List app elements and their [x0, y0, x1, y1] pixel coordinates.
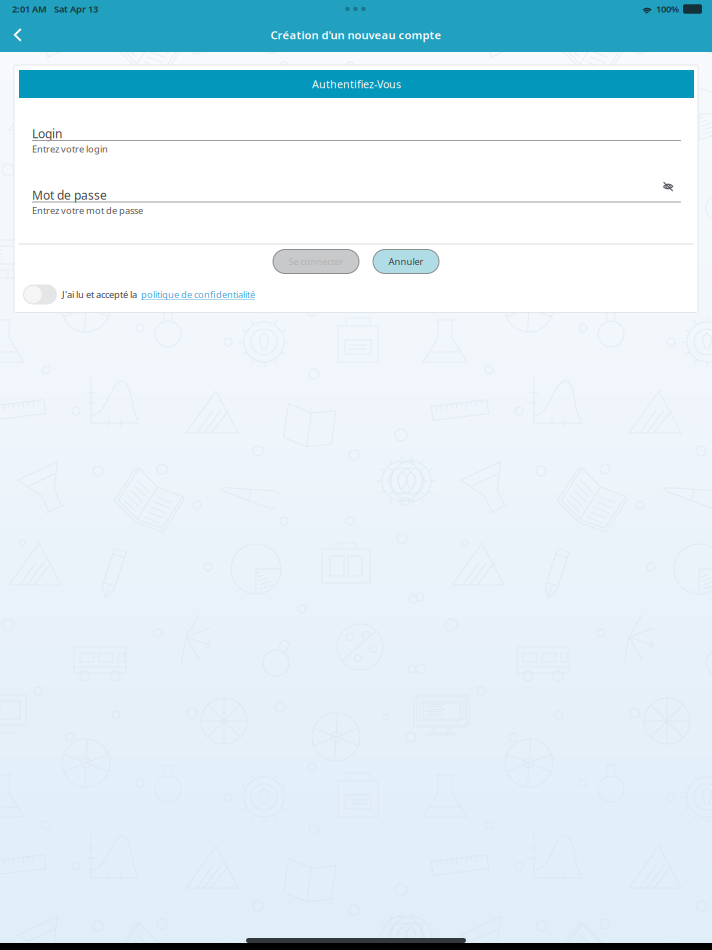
staticText: 2:01 AM: [12, 3, 47, 15]
staticText: J'ai lu et accepté la: [62, 288, 137, 301]
staticText: politique de confidentialité: [141, 288, 255, 301]
button[interactable]: politique de confidentialité: [137, 288, 255, 301]
staticText: Authentifiez-Vous: [312, 77, 401, 91]
staticText: Sat Apr 13: [54, 3, 98, 15]
staticText: Mot de passe: [32, 187, 107, 203]
button[interactable]: Back: [0, 18, 36, 52]
button[interactable]: Se connecter: [273, 249, 359, 273]
staticText: Se connecter: [288, 255, 343, 268]
button[interactable]: Accept privacy policy: [23, 284, 57, 304]
staticText: Login: [32, 125, 62, 141]
button[interactable]: Show password: [657, 179, 679, 193]
button[interactable]: Annuler: [373, 249, 439, 273]
staticText: Entrez votre mot de passe: [32, 204, 143, 217]
staticText: Entrez votre login: [32, 143, 108, 155]
staticText: 100%: [656, 3, 679, 15]
staticText: Annuler: [388, 255, 423, 268]
staticText: Création d'un nouveau compte: [270, 27, 441, 43]
